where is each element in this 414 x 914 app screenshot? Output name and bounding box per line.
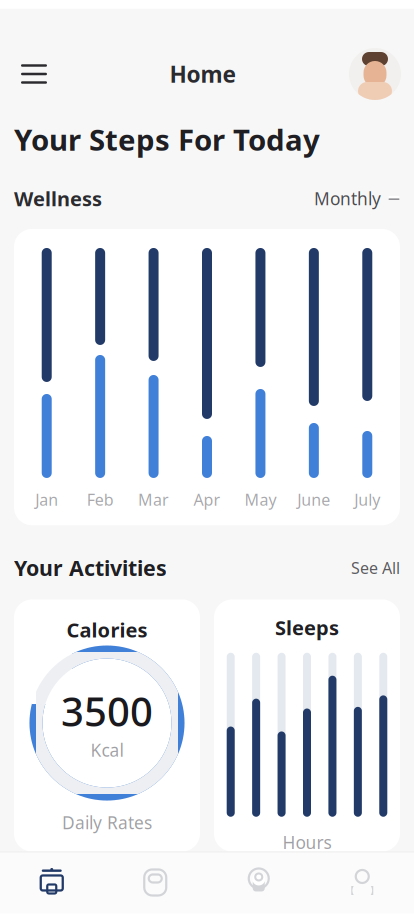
- button[interactable]: Weight: [103, 851, 207, 913]
- staticText: See All: [351, 557, 400, 578]
- staticText: Feb: [87, 489, 114, 510]
- staticText: Daily Rates: [62, 811, 152, 834]
- staticText: Home: [169, 59, 236, 89]
- staticText: May: [244, 489, 276, 510]
- staticText: Your Activities: [14, 554, 167, 582]
- staticText: Wellness: [14, 185, 102, 212]
- staticText: Jan: [35, 489, 58, 510]
- staticText: Sleeps: [275, 614, 339, 641]
- staticText: Kcal: [90, 739, 123, 762]
- staticText: 3500: [61, 684, 153, 738]
- button[interactable]: Profile: [349, 48, 401, 100]
- staticText: Apr: [193, 489, 220, 510]
- staticText: Hours: [282, 831, 331, 854]
- staticText: Your Steps For Today: [14, 120, 320, 159]
- staticText: Mar: [138, 489, 169, 510]
- button[interactable]: Profile: [310, 851, 414, 913]
- staticText: Monthly: [314, 187, 381, 210]
- staticText: July: [354, 489, 380, 510]
- staticText: Calories: [66, 616, 147, 643]
- button[interactable]: See All: [351, 552, 400, 583]
- staticText: June: [297, 489, 330, 510]
- button[interactable]: Home: [0, 851, 103, 913]
- button[interactable]: Location: [207, 851, 310, 913]
- button[interactable]: Menu: [11, 51, 57, 97]
- button[interactable]: Monthly: [314, 182, 400, 215]
